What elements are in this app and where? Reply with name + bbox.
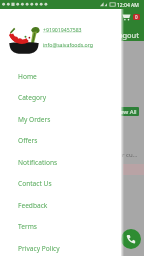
button[interactable]: +919019457583 — [43, 26, 82, 33]
button[interactable]: View All — [112, 107, 139, 116]
staticText: Privacy Policy — [18, 244, 60, 253]
staticText: Logout — [114, 30, 139, 40]
staticText: Feedback — [18, 201, 48, 210]
button[interactable]: Call — [121, 229, 141, 249]
button[interactable]: 0 — [133, 14, 140, 20]
staticText: 12:04 AM — [117, 2, 139, 9]
button[interactable]: Terms — [0, 216, 121, 237]
button[interactable]: Contact Us — [0, 173, 121, 194]
button[interactable]: Feedback — [0, 195, 121, 216]
button[interactable]: info@saivafoods.org — [43, 41, 93, 48]
button[interactable]: Category — [0, 87, 121, 108]
staticText: r cu... — [122, 151, 138, 159]
staticText: Home — [18, 72, 37, 81]
button[interactable]: Offers — [0, 130, 121, 151]
button[interactable]: My Orders — [0, 109, 121, 130]
staticText: 0 — [135, 14, 138, 20]
staticText: Contact Us — [18, 179, 52, 188]
button[interactable]: Shopping cart — [122, 12, 131, 21]
button[interactable]: Notifications — [0, 152, 121, 173]
button[interactable]: Logout — [114, 30, 139, 40]
staticText: Terms — [18, 222, 37, 231]
staticText: Offers — [18, 136, 38, 145]
staticText: Category — [18, 93, 47, 102]
staticText: View All — [115, 108, 137, 116]
staticText: My Orders — [18, 115, 51, 124]
staticText: Notifications — [18, 158, 58, 167]
button[interactable]: Home — [0, 66, 121, 87]
button[interactable]: Privacy Policy — [0, 238, 121, 256]
